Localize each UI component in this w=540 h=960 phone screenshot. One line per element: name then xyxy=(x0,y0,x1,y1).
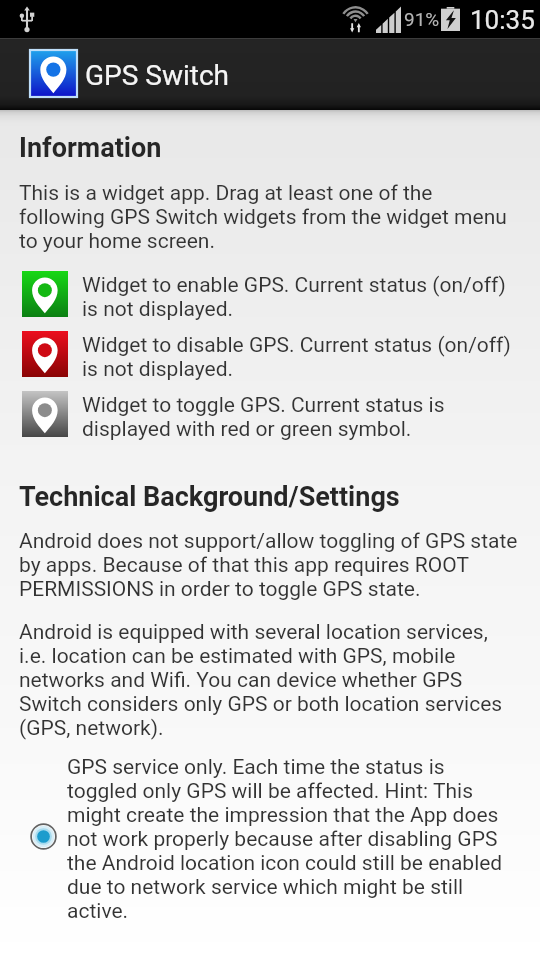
button[interactable]: Widget to disable GPS. Current status (o… xyxy=(0,331,540,389)
staticText: Technical Background/Settings xyxy=(19,481,400,513)
staticText: GPS service only. Each time the status i… xyxy=(67,755,503,923)
staticText: GPS Switch xyxy=(85,59,230,92)
staticText: Widget to toggle GPS. Current status is … xyxy=(82,393,445,441)
staticText: 10:35 xyxy=(470,5,535,35)
staticText: 91% xyxy=(404,8,440,30)
button[interactable]: GPS service only option xyxy=(0,748,540,930)
other: GPS service only option xyxy=(30,823,57,850)
staticText: Widget to enable GPS. Current status (on… xyxy=(82,273,506,321)
staticText: Information xyxy=(19,132,162,164)
staticText: Android does not support/allow toggling … xyxy=(19,529,518,601)
button[interactable]: GPS Switch xyxy=(0,39,250,110)
staticText: Widget to disable GPS. Current status (o… xyxy=(82,333,511,381)
button[interactable]: Widget to toggle GPS. Current status is … xyxy=(0,391,540,449)
button[interactable]: Information xyxy=(19,132,162,164)
staticText: Android is equipped with several locatio… xyxy=(19,620,503,740)
button[interactable]: Widget to enable GPS. Current status (on… xyxy=(0,271,540,329)
button[interactable]: Technical Background/Settings xyxy=(19,481,400,513)
other: USB connected xyxy=(18,6,36,32)
staticText: This is a widget app. Drag at least one … xyxy=(19,181,507,253)
